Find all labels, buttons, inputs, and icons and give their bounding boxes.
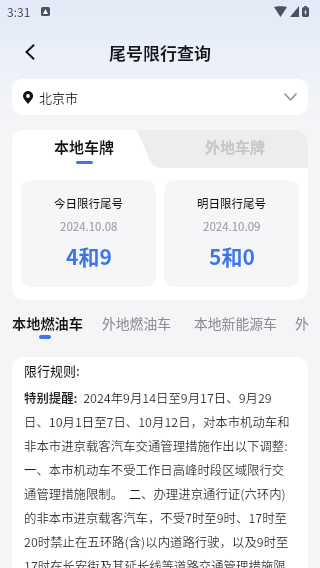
staticText: 2024.10.08 (60, 218, 118, 235)
button[interactable]: 外地新能源车 (295, 313, 320, 345)
button[interactable]: 本地新能源车 (194, 313, 277, 345)
button[interactable]: 外地燃油车 (102, 313, 171, 345)
staticText: 本地车牌 (54, 136, 115, 158)
staticText: 本地新能源车 (194, 313, 277, 333)
staticText: 5和0 (209, 241, 255, 271)
button[interactable]: Back (10, 32, 50, 72)
staticText: 尾号限行查询 (109, 40, 211, 65)
button[interactable]: 北京市 (12, 79, 308, 115)
staticText: 本地燃油车 (12, 313, 83, 334)
staticText: 外地车牌 (205, 136, 266, 158)
staticText: 4和9 (66, 241, 112, 271)
staticText: 特别提醒: 2024年9月14日至9月17日、9月29日、10月1日至7日、10… (24, 389, 296, 568)
button[interactable]: 外地车牌 (164, 130, 300, 168)
staticText: 外地燃油车 (102, 313, 171, 333)
staticText: 今日限行尾号 (54, 195, 123, 212)
staticText: 2024.10.09 (203, 218, 261, 235)
button[interactable]: 本地车牌 (12, 130, 143, 168)
button[interactable]: 明日限行尾号 (164, 180, 299, 287)
button[interactable]: 本地燃油车 (12, 313, 83, 345)
staticText: 北京市 (39, 88, 79, 107)
staticText: 明日限行尾号 (197, 195, 266, 212)
staticText: 外地新能源车 (295, 313, 320, 333)
staticText: 限行规则: (24, 361, 80, 380)
button[interactable]: 今日限行尾号 (21, 180, 156, 287)
staticText: 3:31 (7, 3, 31, 20)
